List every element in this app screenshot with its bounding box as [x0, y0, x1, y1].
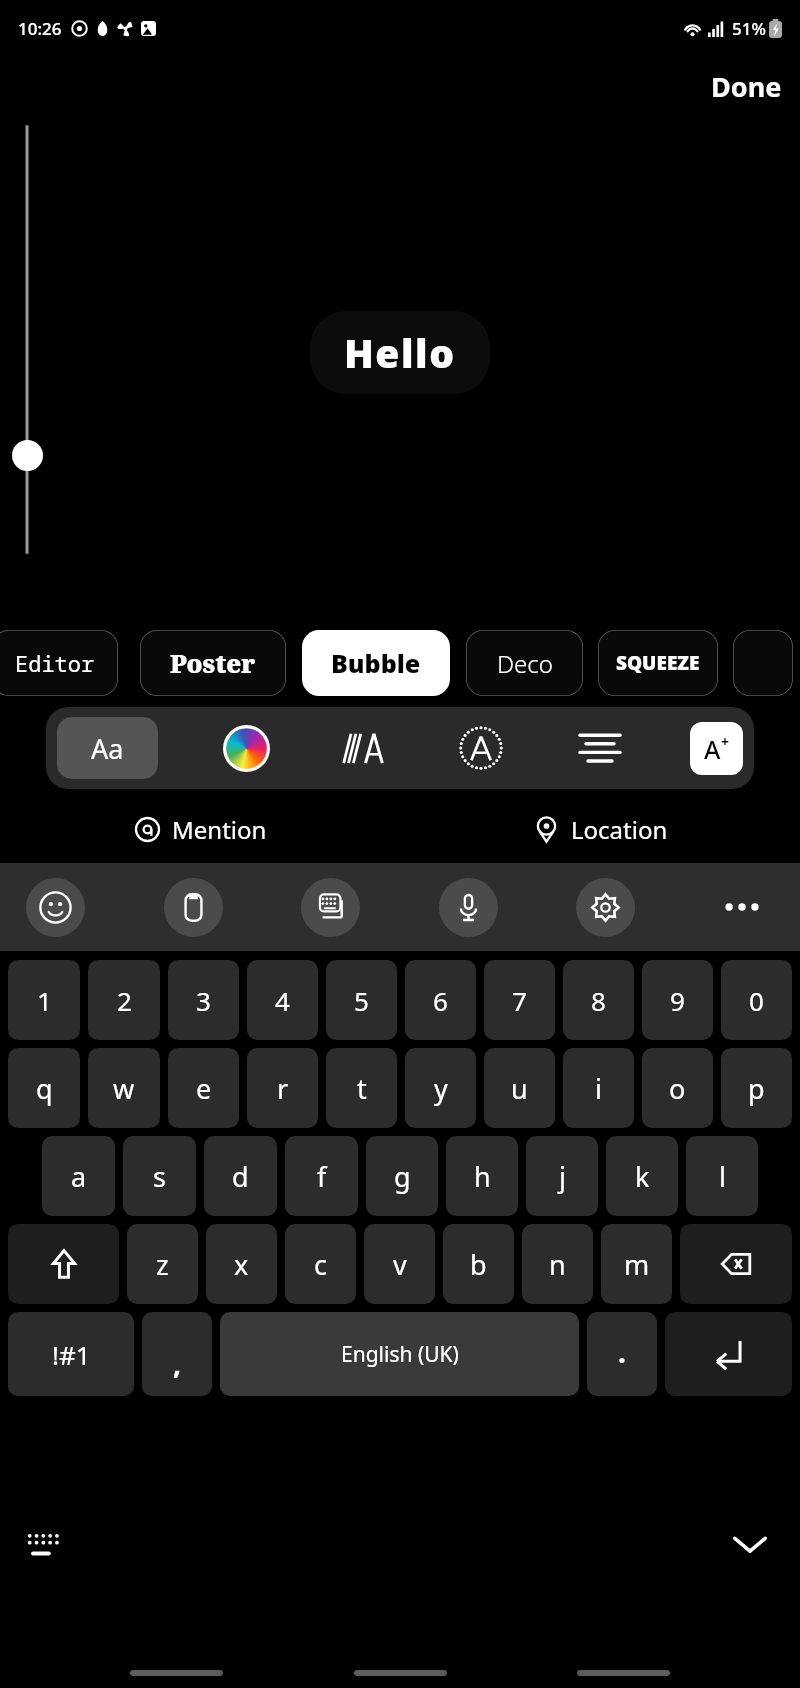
staticText: f	[317, 1158, 327, 1195]
button[interactable]: k	[606, 1136, 678, 1216]
button[interactable]: Mention	[0, 803, 400, 855]
staticText: p	[748, 1070, 765, 1107]
button[interactable]: ,	[142, 1312, 212, 1396]
button[interactable]: p	[721, 1048, 792, 1128]
button[interactable]: Italic style	[335, 720, 391, 776]
button[interactable]: 3	[168, 960, 239, 1040]
staticText: a	[71, 1158, 87, 1195]
staticText: m	[624, 1246, 650, 1283]
staticText: 1	[37, 983, 52, 1018]
button[interactable]: Backspace	[680, 1224, 792, 1304]
button[interactable]: Colour	[220, 722, 272, 774]
button[interactable]: h	[446, 1136, 518, 1216]
button[interactable]: w	[88, 1048, 160, 1128]
staticText: j	[559, 1158, 566, 1195]
button[interactable]: 8	[563, 960, 634, 1040]
button[interactable]: a	[42, 1136, 115, 1216]
staticText: 2	[117, 983, 132, 1018]
button[interactable]: More options	[714, 879, 770, 935]
staticText: c	[314, 1246, 327, 1283]
button[interactable]: g	[366, 1136, 438, 1216]
button[interactable]: y	[405, 1048, 476, 1128]
button[interactable]: z	[127, 1224, 198, 1304]
staticText: !#1	[52, 1337, 91, 1372]
staticText: Poster	[170, 646, 256, 680]
button[interactable]: Bubble	[302, 630, 450, 696]
button[interactable]: b	[443, 1224, 514, 1304]
staticText: ,	[173, 1344, 181, 1382]
button[interactable]: Hello	[310, 311, 490, 394]
button[interactable]: t	[326, 1048, 397, 1128]
staticText: Location	[571, 813, 668, 846]
staticText: r	[277, 1070, 289, 1107]
button[interactable]: f	[285, 1136, 358, 1216]
button[interactable]: Hide keyboard	[722, 1516, 778, 1572]
staticText: h	[474, 1158, 491, 1195]
button[interactable]: r	[247, 1048, 318, 1128]
staticText: z	[156, 1246, 169, 1283]
button[interactable]: i	[563, 1048, 634, 1128]
button[interactable]: SQUEEZE	[598, 630, 718, 696]
button[interactable]: m	[601, 1224, 672, 1304]
button[interactable]: Deco	[466, 630, 583, 696]
button[interactable]: u	[484, 1048, 555, 1128]
staticText: 51%	[732, 17, 766, 40]
staticText: +	[721, 732, 730, 751]
button[interactable]: Shift	[8, 1224, 119, 1304]
button[interactable]: Keyboard layouts	[301, 878, 360, 937]
button[interactable]: 6	[405, 960, 476, 1040]
button[interactable]: 2	[88, 960, 160, 1040]
button[interactable]: 4	[247, 960, 318, 1040]
button[interactable]: x	[206, 1224, 277, 1304]
button[interactable]	[733, 630, 793, 696]
button[interactable]: Aa	[57, 717, 158, 779]
button[interactable]: 1	[8, 960, 80, 1040]
button[interactable]: e	[168, 1048, 239, 1128]
button[interactable]: .	[587, 1312, 657, 1396]
button[interactable]: Text alignment	[572, 720, 628, 776]
staticText: .	[618, 1333, 626, 1371]
button[interactable]: Clipboard	[164, 878, 223, 937]
staticText: Editor	[15, 648, 95, 678]
button[interactable]: Outline style	[453, 720, 509, 776]
button[interactable]: Enter	[665, 1312, 792, 1396]
button[interactable]: Voice input	[439, 878, 498, 937]
button[interactable]: o	[642, 1048, 713, 1128]
button[interactable]: Text size slider	[12, 440, 43, 471]
button[interactable]: 0	[721, 960, 792, 1040]
button[interactable]: Poster	[140, 630, 286, 696]
button[interactable]: n	[522, 1224, 593, 1304]
staticText: 4	[275, 983, 290, 1018]
staticText: 0	[749, 983, 764, 1018]
button[interactable]: c	[285, 1224, 356, 1304]
staticText: Bubble	[331, 646, 421, 680]
button[interactable]: Location	[400, 803, 800, 855]
button[interactable]: v	[364, 1224, 435, 1304]
button[interactable]: d	[204, 1136, 277, 1216]
button[interactable]: l	[686, 1136, 758, 1216]
button[interactable]: Settings	[576, 878, 635, 937]
staticText: y	[434, 1070, 448, 1107]
button[interactable]: Emoji	[26, 878, 85, 937]
staticText: 5	[354, 983, 369, 1018]
button[interactable]: Change keyboard layout	[18, 1518, 70, 1570]
button[interactable]: 9	[642, 960, 713, 1040]
button[interactable]: English (UK)	[220, 1312, 579, 1396]
button[interactable]: Editor	[0, 630, 118, 696]
button[interactable]: Done	[693, 62, 800, 111]
button[interactable]: !#1	[8, 1312, 134, 1396]
staticText: t	[357, 1070, 367, 1107]
staticText: SQUEEZE	[616, 650, 700, 676]
staticText: 6	[433, 983, 448, 1018]
staticText: Deco	[497, 647, 553, 680]
button[interactable]: j	[526, 1136, 598, 1216]
staticText: 9	[670, 983, 685, 1018]
button[interactable]: Add text effect	[690, 722, 743, 775]
staticText: Aa	[91, 730, 124, 767]
button[interactable]: s	[123, 1136, 196, 1216]
staticText: v	[393, 1246, 407, 1283]
button[interactable]: q	[8, 1048, 80, 1128]
button[interactable]: 7	[484, 960, 555, 1040]
button[interactable]: 5	[326, 960, 397, 1040]
staticText: e	[196, 1070, 212, 1107]
